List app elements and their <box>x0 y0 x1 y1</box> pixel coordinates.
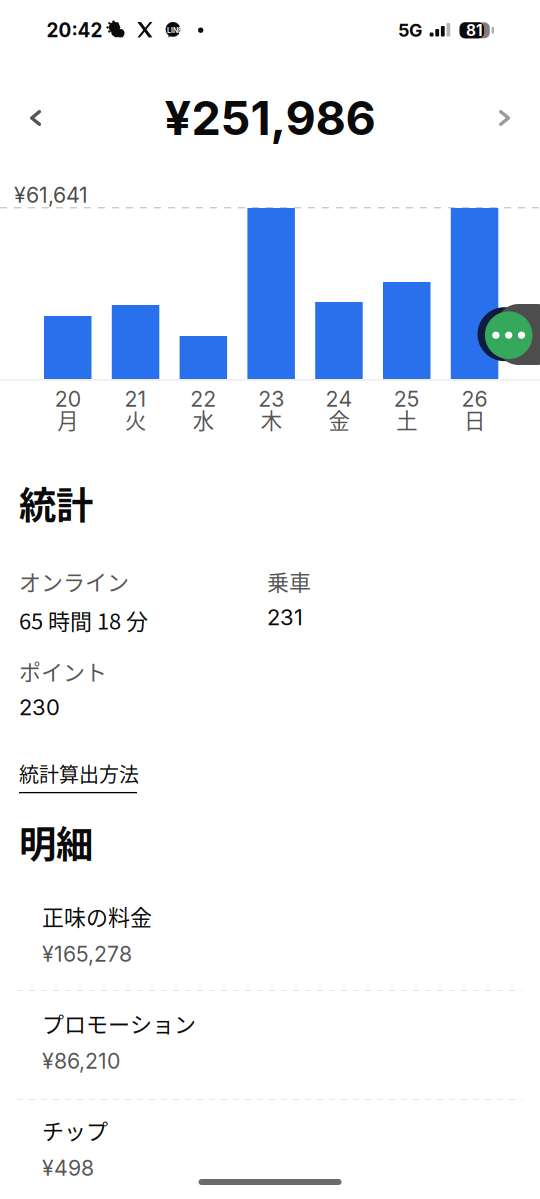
button[interactable]: 正味の料金 <box>0 884 540 990</box>
button[interactable]: Previous period <box>10 92 61 144</box>
staticText: 統計 <box>19 476 93 530</box>
staticText: 乗車 <box>267 565 311 597</box>
staticText: 23 <box>258 386 284 412</box>
button[interactable]: More options <box>478 304 540 365</box>
staticText: 月 <box>57 404 78 435</box>
staticText: 水 <box>193 404 214 435</box>
staticText: 65 時間 18 分 <box>19 604 148 636</box>
staticText: ¥61,641 <box>14 182 88 208</box>
staticText: ¥498 <box>42 1155 94 1181</box>
staticText: 統計算出方法 <box>19 759 139 788</box>
button[interactable]: Next period <box>479 92 530 144</box>
staticText: 231 <box>267 604 303 631</box>
staticText: 20:42 <box>46 19 102 42</box>
staticText: 正味の料金 <box>42 900 152 932</box>
staticText: 24 <box>325 386 352 412</box>
staticText: 81 <box>466 21 483 40</box>
staticText: オンライン <box>19 565 129 597</box>
staticText: ポイント <box>19 655 107 687</box>
staticText: 木 <box>261 404 282 435</box>
staticText: 26 <box>462 386 488 412</box>
staticText: 22 <box>190 386 216 412</box>
staticText: 日 <box>464 404 485 435</box>
staticText: ¥86,210 <box>42 1048 120 1074</box>
staticText: 20 <box>55 386 81 412</box>
staticText: 25 <box>394 386 420 412</box>
button[interactable]: 統計算出方法 <box>0 753 158 799</box>
staticText: 土 <box>396 404 417 435</box>
staticText: 230 <box>19 694 60 721</box>
staticText: ¥251,986 <box>164 90 375 146</box>
staticText: プロモーション <box>42 1007 196 1039</box>
button[interactable]: チップ <box>0 1100 540 1199</box>
button[interactable]: プロモーション <box>0 991 540 1099</box>
staticText: 金 <box>328 404 349 435</box>
staticText: 5G <box>398 19 422 41</box>
staticText: 明細 <box>19 815 93 869</box>
staticText: チップ <box>42 1114 108 1146</box>
staticText: 21 <box>124 386 146 412</box>
staticText: LINE <box>167 26 182 35</box>
staticText: ¥165,278 <box>42 941 132 967</box>
staticText: 火 <box>125 404 146 435</box>
